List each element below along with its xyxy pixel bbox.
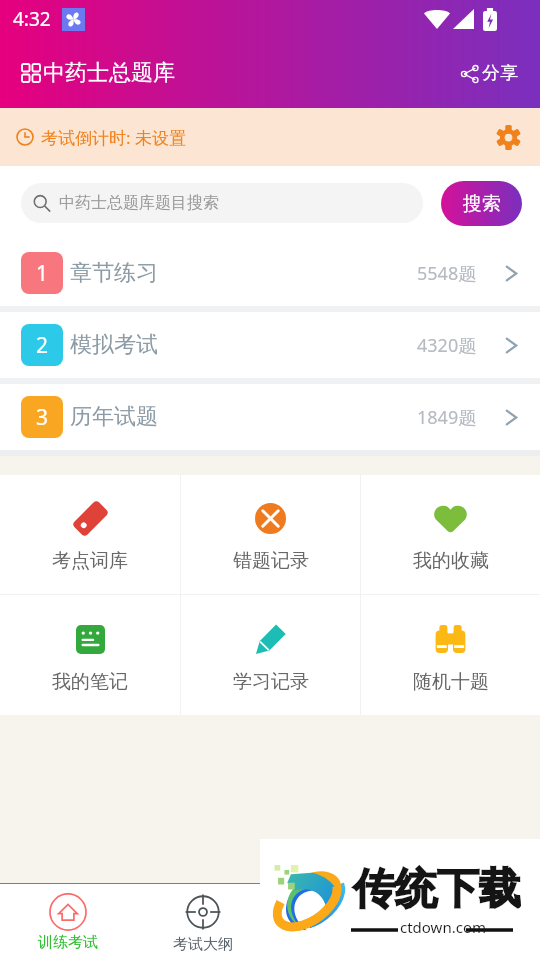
staticText: 训练考试 [38, 933, 98, 952]
staticText: 3 [36, 403, 49, 432]
staticText: 学习记录 [233, 670, 309, 694]
staticText: 分享 [482, 62, 518, 85]
staticText: 4:32 [13, 6, 51, 32]
button[interactable]: 训练考试 [0, 884, 135, 960]
staticText: ctdown.com [400, 917, 486, 937]
button[interactable]: 1 [0, 240, 540, 306]
button[interactable]: Settings [490, 119, 526, 155]
staticText: 中药士总题库题目搜索 [59, 193, 219, 213]
staticText: 随机十题 [413, 670, 489, 694]
staticText: 历年试题 [70, 403, 158, 431]
staticText: 我的收藏 [413, 549, 489, 573]
staticText: 我的笔记 [52, 670, 128, 694]
button[interactable]: 搜索 [441, 181, 522, 226]
staticText: 5548题 [417, 261, 477, 286]
staticText: 中药士总题库 [43, 59, 175, 87]
staticText: 章节练习 [70, 259, 158, 287]
button[interactable]: 错题记录 [181, 475, 360, 594]
staticText: 考试倒计时: 未设置 [41, 126, 186, 149]
button[interactable]: 3 [0, 384, 540, 450]
staticText: 1849题 [417, 405, 477, 430]
button[interactable]: 中药士总题库题目搜索 [21, 183, 423, 223]
staticText: 1 [36, 259, 49, 288]
button[interactable]: 学习记录 [181, 595, 360, 715]
button[interactable]: 考试大纲 [135, 884, 270, 960]
staticText: 2 [36, 331, 49, 360]
staticText: 考试大纲 [173, 935, 233, 954]
staticText: 错题记录 [233, 549, 309, 573]
staticText: 考点词库 [52, 549, 128, 573]
staticText: 传统下载 [353, 863, 521, 916]
button[interactable]: 2 [0, 312, 540, 378]
staticText: 模拟考试 [70, 331, 158, 359]
button[interactable]: 考点词库 [0, 475, 180, 594]
staticText: 4320题 [417, 333, 477, 358]
button[interactable]: 分享 [455, 54, 524, 93]
button[interactable]: 我的收藏 [361, 475, 540, 594]
staticText: 搜索 [463, 192, 501, 216]
button[interactable]: 我的笔记 [0, 595, 180, 715]
button[interactable]: 随机十题 [361, 595, 540, 715]
